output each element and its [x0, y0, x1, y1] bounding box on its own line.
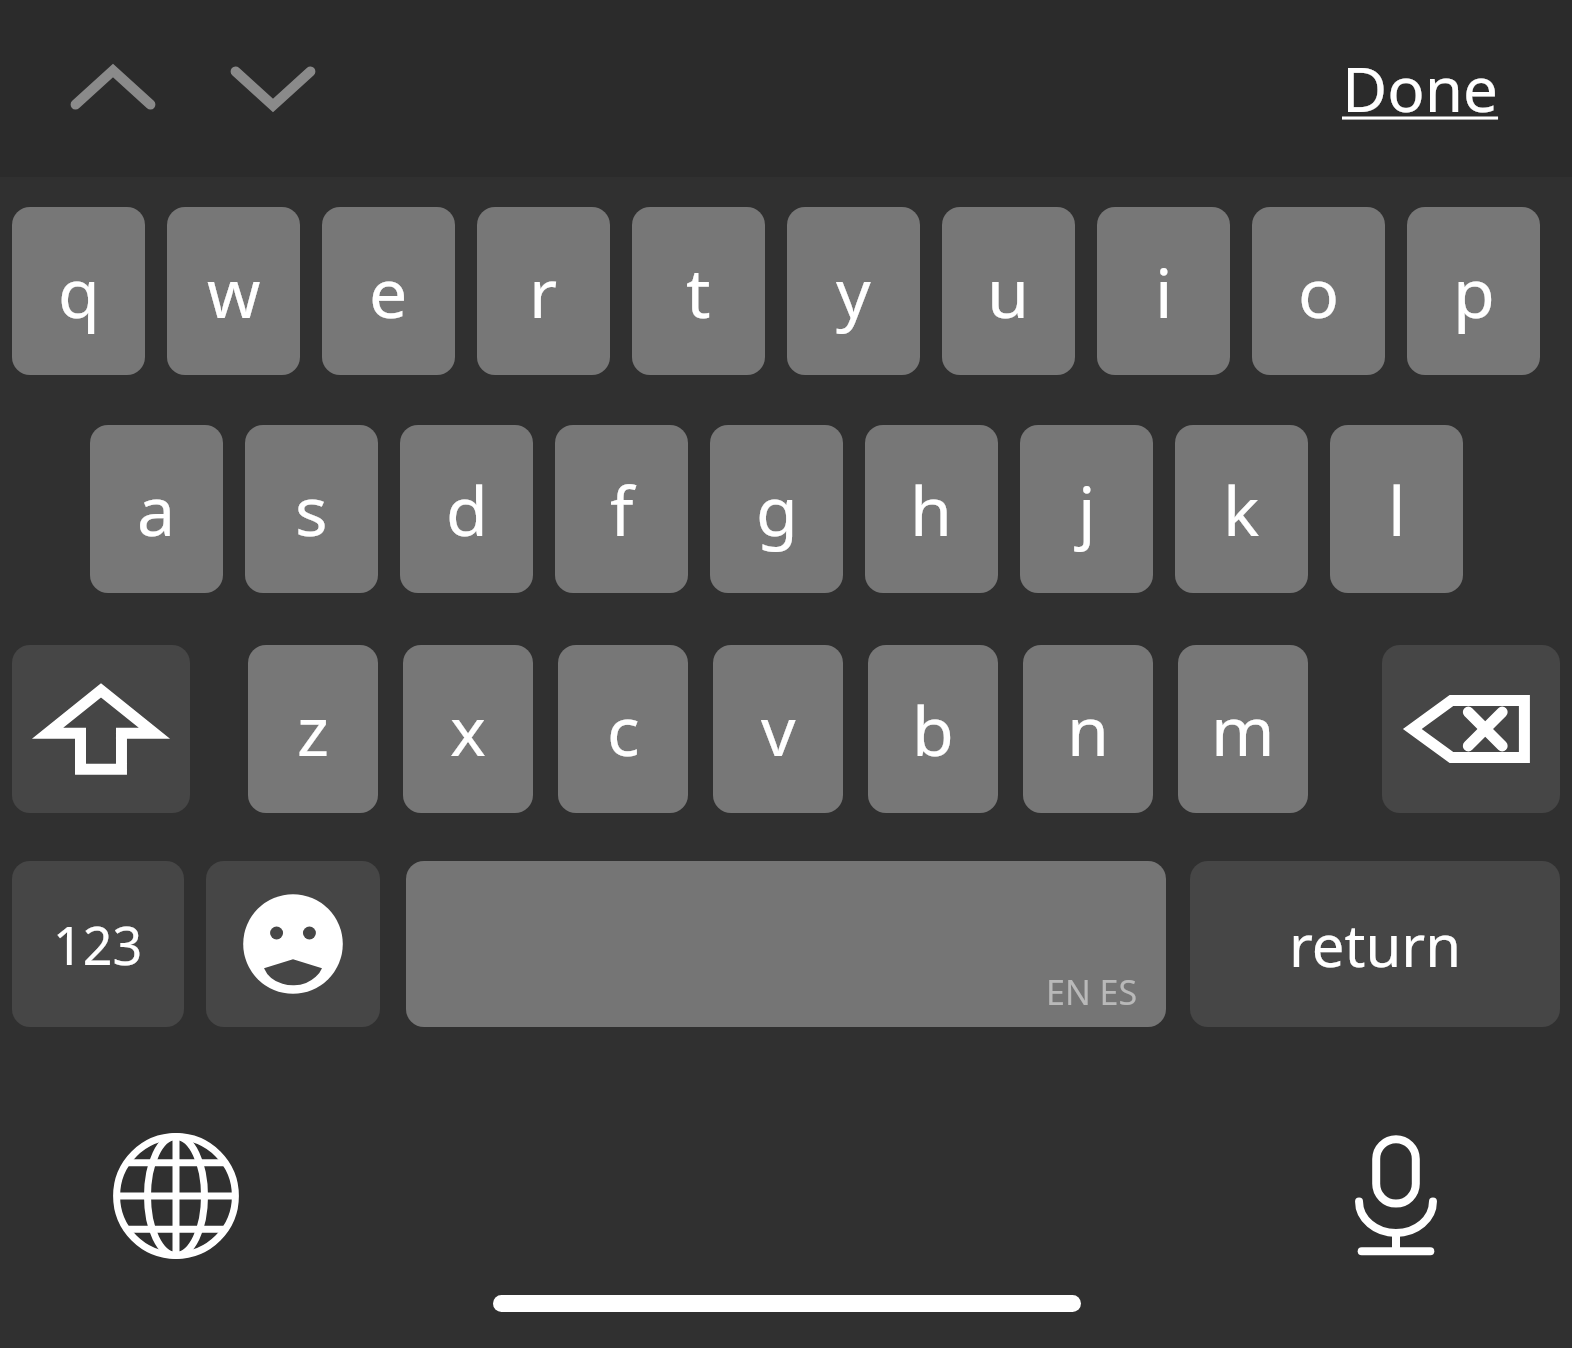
staticText: a [137, 463, 176, 556]
staticText: u [987, 245, 1030, 338]
staticText: d [446, 463, 488, 556]
button[interactable]: b [868, 645, 998, 813]
button[interactable]: a [90, 425, 223, 593]
button[interactable]: Change keyboard [110, 1130, 242, 1262]
staticText: n [1067, 683, 1110, 776]
button[interactable]: Emoji [206, 861, 380, 1027]
staticText: x [450, 683, 486, 776]
button[interactable]: w [167, 207, 300, 375]
staticText: m [1211, 683, 1275, 776]
button[interactable]: g [710, 425, 843, 593]
button[interactable]: Backspace [1382, 645, 1560, 813]
button[interactable]: l [1330, 425, 1463, 593]
button[interactable]: return [1190, 861, 1560, 1027]
staticText: s [295, 463, 328, 556]
button[interactable]: o [1252, 207, 1385, 375]
staticText: e [369, 245, 408, 338]
button[interactable]: Shift [12, 645, 190, 813]
button[interactable]: i [1097, 207, 1230, 375]
staticText: y [836, 245, 871, 338]
button[interactable]: Voice input [1330, 1128, 1462, 1268]
button[interactable]: v [713, 645, 843, 813]
button[interactable]: d [400, 425, 533, 593]
staticText: f [610, 463, 634, 556]
staticText: 123 [53, 909, 143, 980]
staticText: i [1155, 245, 1173, 338]
staticText: k [1223, 463, 1260, 556]
button[interactable]: n [1023, 645, 1153, 813]
button[interactable]: j [1020, 425, 1153, 593]
staticText: g [756, 463, 798, 556]
button[interactable]: h [865, 425, 998, 593]
staticText: c [607, 683, 640, 776]
button[interactable]: m [1178, 645, 1308, 813]
button[interactable]: q [12, 207, 145, 375]
staticText: p [1453, 245, 1495, 338]
staticText: b [912, 683, 954, 776]
button[interactable]: c [558, 645, 688, 813]
button[interactable]: x [403, 645, 533, 813]
staticText: z [297, 683, 329, 776]
button[interactable]: t [632, 207, 765, 375]
staticText: Done [1342, 46, 1499, 130]
staticText: q [58, 245, 100, 338]
staticText: v [761, 683, 796, 776]
button[interactable]: s [245, 425, 378, 593]
staticText: return [1289, 905, 1462, 984]
staticText: t [686, 245, 711, 338]
button[interactable]: e [322, 207, 455, 375]
staticText: w [207, 245, 261, 338]
staticText: j [1078, 463, 1096, 556]
button[interactable]: y [787, 207, 920, 375]
button[interactable]: Space [406, 861, 1166, 1027]
button[interactable]: r [477, 207, 610, 375]
button[interactable]: z [248, 645, 378, 813]
button[interactable]: Previous field [58, 42, 168, 134]
button[interactable]: Done [1310, 38, 1530, 138]
staticText: o [1298, 245, 1340, 338]
button[interactable]: Next field [218, 42, 328, 134]
button[interactable]: p [1407, 207, 1540, 375]
staticText: l [1388, 463, 1406, 556]
button[interactable]: f [555, 425, 688, 593]
staticText: r [529, 245, 558, 338]
button[interactable]: u [942, 207, 1075, 375]
staticText: h [910, 463, 953, 556]
staticText: EN ES [1046, 969, 1138, 1015]
button[interactable]: 123 [12, 861, 184, 1027]
button[interactable]: k [1175, 425, 1308, 593]
